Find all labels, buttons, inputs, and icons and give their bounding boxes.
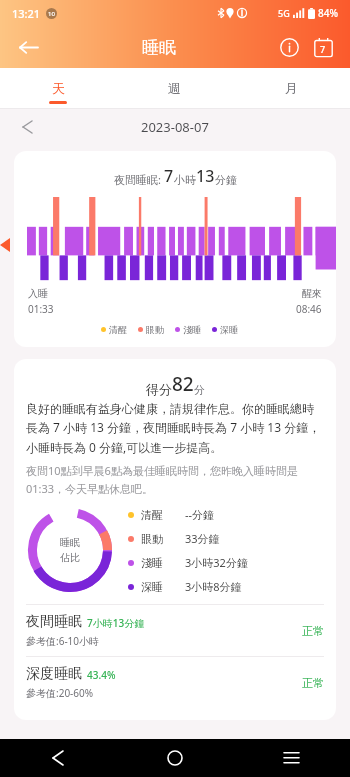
staticText: 3小時32分鐘 xyxy=(185,555,248,570)
button[interactable]: 得分 xyxy=(14,359,336,720)
staticText: --分鐘 xyxy=(185,507,215,522)
staticText: 43.4% xyxy=(87,668,116,682)
button[interactable]: Calendar xyxy=(308,32,338,62)
button[interactable]: 深度睡眠 xyxy=(26,657,324,708)
staticText: 夜間睡眠 xyxy=(26,613,82,631)
staticText: 01:33 xyxy=(28,302,54,316)
staticText: 08:46 xyxy=(296,302,322,316)
staticText: 正常 xyxy=(302,624,324,638)
button[interactable]: 月 xyxy=(233,68,350,108)
staticText: 7 xyxy=(164,165,174,187)
button[interactable]: 夜間睡眠 xyxy=(26,605,324,656)
staticText: 小時 xyxy=(174,173,196,187)
staticText: 深睡 xyxy=(141,580,175,594)
button[interactable]: Home xyxy=(116,739,233,777)
button[interactable]: Previous day xyxy=(14,114,40,140)
button[interactable]: 夜間睡眠: xyxy=(14,151,336,347)
staticText: 良好的睡眠有益身心健康，請規律作息。你的睡眠總時長為 7 小時 13 分鐘，夜間… xyxy=(26,401,324,455)
staticText: 參考值:20-60% xyxy=(26,686,94,700)
staticText: 深度睡眠 xyxy=(26,665,82,683)
staticText: 5G xyxy=(278,7,290,19)
button[interactable]: Back xyxy=(0,739,116,777)
staticText: 13:21 xyxy=(12,6,41,21)
staticText: 分鐘 xyxy=(215,173,237,187)
staticText: 3小時8分鐘 xyxy=(185,579,242,594)
staticText: 天 xyxy=(52,80,65,96)
staticText: 佔比 xyxy=(60,551,80,564)
staticText: 正常 xyxy=(302,676,324,690)
button[interactable]: Recent apps xyxy=(233,739,350,777)
staticText: 13 xyxy=(196,165,215,187)
staticText: 7 xyxy=(320,43,326,55)
staticText: 夜間睡眠: xyxy=(114,172,164,187)
staticText: 淺睡 xyxy=(183,324,201,335)
button[interactable]: Back xyxy=(12,31,44,63)
button[interactable]: 週 xyxy=(116,68,233,108)
staticText: 淺睡 xyxy=(141,556,175,570)
staticText: 週 xyxy=(168,80,181,96)
staticText: 月 xyxy=(285,80,298,96)
staticText: 睡眠 xyxy=(142,37,176,58)
staticText: 33分鐘 xyxy=(185,531,220,546)
staticText: 2023-08-07 xyxy=(141,118,209,136)
button[interactable]: 天 xyxy=(0,68,116,108)
staticText: 夜間10點到早晨6點為最佳睡眠時間，您昨晚入睡時間是 01:33，今天早點休息吧… xyxy=(26,463,324,496)
staticText: 入睡 xyxy=(28,287,48,300)
staticText: 82 xyxy=(172,371,194,397)
staticText: 睡眠 xyxy=(60,536,80,549)
staticText: 醒來 xyxy=(302,287,322,300)
staticText: 清醒 xyxy=(141,508,175,522)
staticText: 眼動 xyxy=(141,532,175,546)
staticText: 得分 xyxy=(146,381,172,397)
staticText: 7小時13分鐘 xyxy=(87,616,145,630)
staticText: 分 xyxy=(194,383,205,397)
staticText: 10 xyxy=(48,10,55,18)
button[interactable]: Info xyxy=(274,32,304,62)
staticText: 清醒 xyxy=(109,324,127,335)
staticText: 眼動 xyxy=(146,324,164,335)
staticText: 參考值:6-10小時 xyxy=(26,634,100,648)
staticText: 84% xyxy=(318,6,338,20)
staticText: 深睡 xyxy=(220,324,238,335)
